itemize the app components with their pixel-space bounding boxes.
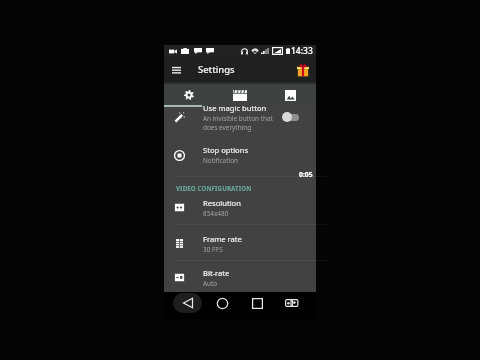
staticText: VIDEO CONFIGURATION (176, 184, 252, 192)
staticText: Frame rate (203, 234, 242, 244)
button[interactable]: Navigation menu (168, 61, 184, 77)
button[interactable]: Video tab (214, 81, 265, 107)
button[interactable]: Home (211, 292, 233, 314)
button[interactable]: Back (173, 293, 202, 313)
button[interactable]: Bit-rate (164, 268, 316, 302)
button[interactable]: Recent apps (246, 292, 268, 314)
button[interactable]: Toggle magic button (282, 105, 312, 129)
staticText: Stop options (203, 145, 249, 155)
staticText: does everything (203, 123, 252, 132)
staticText: 14:33 (291, 45, 313, 57)
staticText: Resolution (203, 198, 241, 208)
staticText: Auto (203, 279, 218, 288)
button[interactable]: Settings tab (164, 81, 214, 107)
button[interactable]: Split screen (280, 292, 302, 314)
staticText: Settings (198, 63, 235, 76)
button[interactable]: Frame rate (164, 234, 316, 268)
button[interactable]: Stop options (164, 145, 316, 179)
staticText: Use magic button (203, 103, 267, 113)
button[interactable]: Use magic button (164, 103, 316, 145)
staticText: Bit-rate (203, 268, 230, 278)
staticText: Notification (203, 156, 238, 165)
staticText: 854x480 (203, 209, 229, 218)
staticText: 0:05 (299, 170, 313, 179)
staticText: An invisible button that (203, 114, 273, 123)
button[interactable]: Gallery tab (265, 81, 316, 107)
button[interactable]: Gift offers (297, 61, 313, 77)
staticText: 30 FPS (203, 245, 223, 254)
button[interactable]: Resolution (164, 198, 316, 232)
